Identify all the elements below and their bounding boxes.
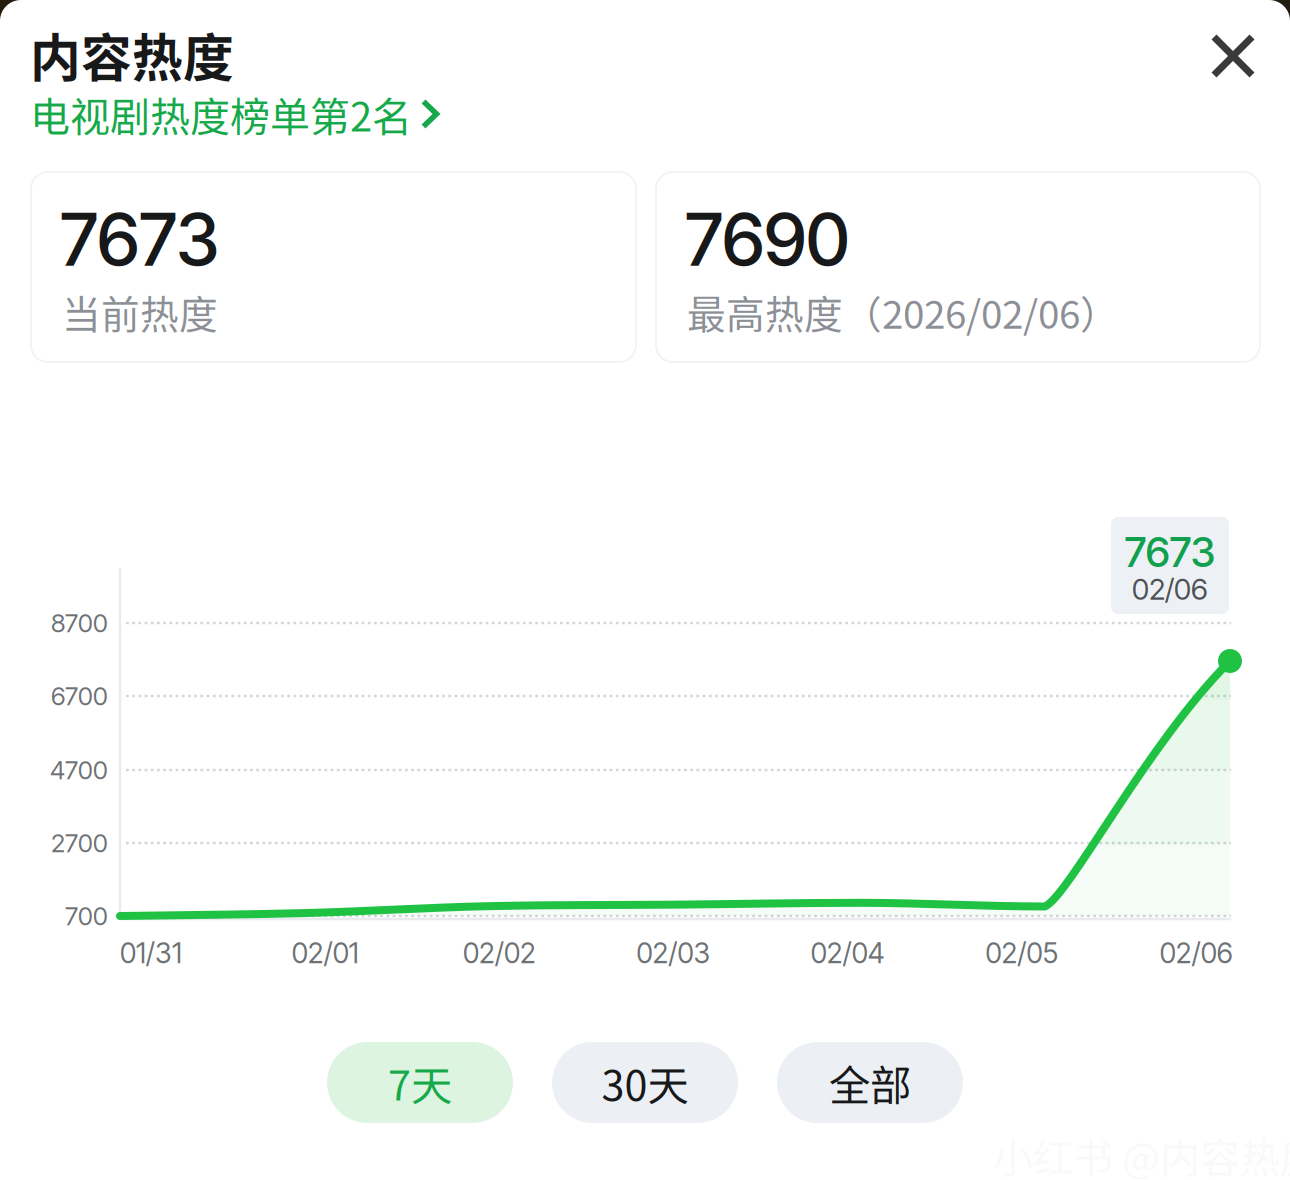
staticText: 全部 bbox=[829, 1053, 911, 1112]
staticText: 当前热度 bbox=[62, 284, 218, 340]
button[interactable]: 全部 bbox=[777, 1042, 963, 1123]
staticText: 电视剧热度榜单第2名 bbox=[30, 85, 412, 143]
button[interactable]: 电视剧热度榜单第2名 bbox=[30, 85, 441, 143]
staticText: 4700 bbox=[50, 755, 108, 785]
staticText: 30天 bbox=[601, 1053, 688, 1112]
staticText: 02/05 bbox=[985, 936, 1058, 970]
staticText: 7天 bbox=[388, 1053, 452, 1112]
staticText: 02/01 bbox=[292, 936, 359, 970]
button[interactable]: 7天 bbox=[327, 1042, 513, 1123]
staticText: 02/06 bbox=[1132, 571, 1208, 607]
staticText: 7673 bbox=[60, 196, 219, 283]
staticText: 内容热度 bbox=[30, 18, 234, 91]
staticText: 6700 bbox=[51, 681, 108, 711]
staticText: 700 bbox=[65, 901, 108, 931]
staticText: 01/31 bbox=[120, 936, 182, 970]
staticText: 8700 bbox=[51, 608, 108, 638]
staticText: 7690 bbox=[685, 196, 849, 283]
staticText: 02/02 bbox=[463, 936, 536, 970]
button[interactable]: 30天 bbox=[552, 1042, 738, 1123]
staticText: 7673 bbox=[1124, 527, 1215, 577]
button[interactable]: 关闭 bbox=[1188, 11, 1278, 101]
staticText: 最高热度（2026/02/06） bbox=[687, 284, 1119, 340]
staticText: 02/03 bbox=[637, 936, 711, 970]
staticText: 2700 bbox=[51, 828, 108, 858]
staticText: 02/06 bbox=[1160, 936, 1233, 970]
staticText: 02/04 bbox=[811, 936, 885, 970]
